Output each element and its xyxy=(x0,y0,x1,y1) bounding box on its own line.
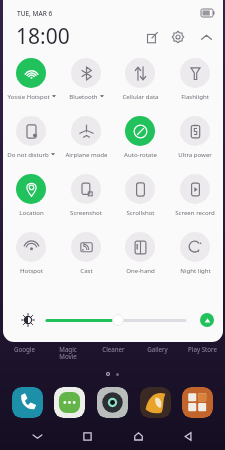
staticText: 18:00 xyxy=(16,22,70,51)
button[interactable]: Cleaner xyxy=(92,345,134,353)
button[interactable]: Scrollshot xyxy=(114,171,166,229)
button[interactable]: Play Store xyxy=(182,387,213,418)
button[interactable]: One-hand xyxy=(114,229,166,287)
staticText: Location xyxy=(19,208,44,216)
button[interactable]: Recents xyxy=(74,423,100,449)
button[interactable]: Do not disturb xyxy=(5,113,57,171)
button[interactable]: Edit tiles xyxy=(141,26,163,48)
button[interactable]: Brightness xyxy=(112,314,124,326)
button[interactable]: Phone xyxy=(12,387,43,418)
staticText: Cleaner xyxy=(102,345,125,353)
staticText: Do not disturb xyxy=(7,150,49,158)
staticText: Yossie Hotspot xyxy=(7,92,50,100)
staticText: Cast xyxy=(80,266,93,274)
staticText: Screen record xyxy=(175,208,215,216)
button[interactable]: Back xyxy=(175,423,201,449)
button[interactable]: Auto brightness xyxy=(200,313,214,327)
staticText: Auto-rotate xyxy=(124,150,157,158)
button[interactable]: Gallery xyxy=(136,345,178,353)
button[interactable]: Location xyxy=(5,171,57,229)
staticText: Scrollshot xyxy=(126,208,155,216)
staticText: Night light xyxy=(180,266,211,274)
button[interactable]: Cast xyxy=(60,229,112,287)
button[interactable]: Yossie Hotspot xyxy=(5,55,57,113)
staticText: Bluetooth xyxy=(69,92,98,100)
button[interactable]: Home xyxy=(125,423,151,449)
staticText: One-hand xyxy=(126,266,155,274)
button[interactable]: Bluetooth xyxy=(60,55,112,113)
staticText: Play Store xyxy=(188,345,217,353)
button[interactable]: Google xyxy=(3,345,45,353)
staticText: Ultra power xyxy=(178,150,212,158)
staticText: Airplane mode xyxy=(65,150,108,158)
staticText: Flashlight xyxy=(181,92,209,100)
button[interactable]: Screenshot xyxy=(60,171,112,229)
button[interactable]: Hotspot xyxy=(5,229,57,287)
button[interactable]: Settings xyxy=(167,26,189,48)
button[interactable]: Airplane mode xyxy=(60,113,112,171)
button[interactable]: Camera xyxy=(97,387,128,418)
button[interactable]: Messages xyxy=(54,387,85,418)
button[interactable]: Cellular data xyxy=(114,55,166,113)
button[interactable]: Ultra power xyxy=(169,113,221,171)
button[interactable]: Play Store xyxy=(181,345,223,353)
button[interactable]: Screen record xyxy=(169,171,221,229)
staticText: Cellular data xyxy=(122,92,159,100)
button[interactable]: Flashlight xyxy=(169,55,221,113)
staticText: Magic Movie xyxy=(59,345,77,361)
button[interactable]: Auto-rotate xyxy=(114,113,166,171)
button[interactable]: Collapse xyxy=(195,26,217,48)
button[interactable]: Hide xyxy=(24,423,50,449)
staticText: Google xyxy=(14,345,35,353)
staticText: Gallery xyxy=(147,345,168,353)
button[interactable]: Night light xyxy=(169,229,221,287)
button[interactable]: Browser xyxy=(140,387,171,418)
staticText: Screenshot xyxy=(70,208,102,216)
staticText: Hotspot xyxy=(20,266,43,274)
button[interactable]: Magic Movie xyxy=(47,345,89,361)
staticText: TUE, MAR 6 xyxy=(17,9,53,18)
